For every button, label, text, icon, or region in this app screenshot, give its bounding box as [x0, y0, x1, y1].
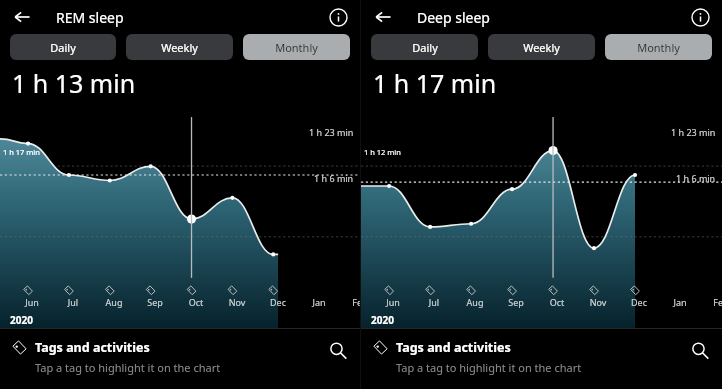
staticText: Monthly: [275, 40, 318, 55]
staticText: Sep: [143, 296, 167, 308]
staticText: 1 h 17 min: [3, 147, 40, 157]
staticText: Monthly: [637, 40, 680, 55]
staticText: Aug: [102, 296, 126, 308]
staticText: Feb: [348, 296, 372, 308]
staticText: 1 h 12 min: [364, 147, 401, 157]
staticText: Nov: [586, 296, 610, 308]
staticText: Tags and activities: [35, 339, 150, 356]
button[interactable]: Info: [686, 3, 714, 31]
staticText: Weekly: [523, 40, 560, 55]
button[interactable]: Back: [369, 3, 397, 31]
button[interactable]: Tags and activities: [361, 329, 722, 389]
staticText: Jul: [422, 296, 446, 308]
button[interactable]: Search: [686, 337, 712, 363]
staticText: 1 h 6 min: [676, 172, 716, 184]
button[interactable]: Daily: [10, 34, 116, 60]
staticText: Oct: [545, 296, 569, 308]
staticText: 1 h 23 min: [671, 126, 716, 138]
staticText: Jul: [61, 296, 85, 308]
staticText: Jun: [381, 296, 405, 308]
button[interactable]: Weekly: [126, 34, 233, 60]
staticText: Daily: [50, 40, 76, 55]
staticText: Sep: [504, 296, 528, 308]
button[interactable]: Weekly: [488, 34, 595, 60]
staticText: Tap a tag to highlight it on the chart: [396, 360, 582, 375]
staticText: Oct: [184, 296, 208, 308]
staticText: Nov: [225, 296, 249, 308]
button[interactable]: Info: [324, 3, 352, 31]
staticText: 1 h 17 min: [373, 66, 497, 100]
button[interactable]: Search: [324, 337, 350, 363]
button[interactable]: Monthly: [605, 34, 712, 60]
staticText: Jan: [668, 296, 692, 308]
staticText: Aug: [463, 296, 487, 308]
staticText: Weekly: [161, 40, 198, 55]
staticText: Jun: [20, 296, 44, 308]
staticText: Jan: [307, 296, 331, 308]
staticText: 2020: [371, 313, 394, 327]
button[interactable]: Daily: [371, 34, 478, 60]
button[interactable]: Back: [8, 3, 36, 31]
staticText: Dec: [627, 296, 651, 308]
staticText: 2020: [10, 313, 33, 327]
button[interactable]: Tags and activities: [0, 329, 360, 389]
staticText: Feb: [709, 296, 722, 308]
staticText: Daily: [412, 40, 438, 55]
staticText: Tags and activities: [396, 339, 511, 356]
staticText: 1 h 6 min: [314, 172, 354, 184]
staticText: 1 h 23 min: [309, 126, 354, 138]
staticText: Deep sleep: [417, 8, 490, 27]
staticText: 1 h 13 min: [12, 66, 136, 100]
staticText: Dec: [266, 296, 290, 308]
button[interactable]: Monthly: [243, 34, 350, 60]
staticText: REM sleep: [56, 8, 124, 27]
staticText: Tap a tag to highlight it on the chart: [35, 360, 221, 375]
